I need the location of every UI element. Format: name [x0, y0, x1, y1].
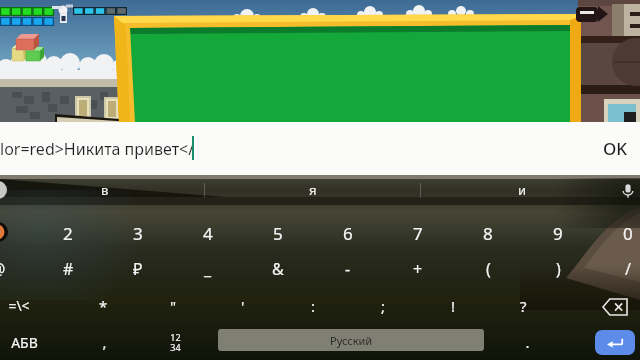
staticText: АБВ [11, 333, 38, 352]
button[interactable]: : [280, 289, 346, 323]
staticText: в [101, 181, 109, 199]
button[interactable]: 2 [35, 216, 101, 250]
button[interactable]: * [70, 289, 136, 323]
staticText: ₽ [133, 258, 143, 280]
staticText: - [345, 258, 351, 280]
button[interactable]: ' [210, 289, 276, 323]
staticText: 2 [63, 222, 73, 245]
button[interactable]: ₽ [105, 252, 171, 286]
button[interactable]: / [595, 252, 640, 286]
staticText: я [309, 181, 317, 199]
staticText: ! [451, 296, 456, 316]
staticText: 3 [133, 222, 143, 245]
button[interactable]: 5 [245, 216, 311, 250]
staticText: _ [204, 258, 212, 280]
staticText: и [518, 181, 527, 199]
button[interactable]: =\< [0, 289, 52, 321]
staticText: 12 34 [170, 331, 181, 353]
button[interactable]: + [385, 252, 451, 286]
button[interactable]: ; [350, 289, 416, 323]
staticText: 0 [623, 222, 633, 245]
staticText: 9 [553, 222, 563, 245]
button[interactable]: & [245, 252, 311, 286]
staticText: 1 [0, 222, 3, 245]
button[interactable]: ? [490, 289, 556, 323]
staticText: / [625, 258, 631, 280]
staticText: " [170, 296, 177, 316]
button[interactable]: 12 34 [150, 328, 200, 356]
staticText: + [413, 258, 423, 280]
staticText: # [63, 258, 74, 280]
button[interactable]: 8 [455, 216, 521, 250]
staticText: =\< [8, 296, 30, 315]
staticText: ; [381, 296, 386, 316]
staticText: 8 [483, 222, 493, 245]
button[interactable]: Voice input [618, 181, 638, 201]
staticText: OK [603, 137, 628, 160]
staticText: ( [486, 258, 491, 280]
button[interactable]: АБВ [0, 326, 57, 358]
staticText: . [525, 332, 530, 352]
button[interactable]: 4 [175, 216, 241, 250]
staticText: * [99, 296, 108, 316]
button[interactable]: 0 [595, 216, 640, 250]
button[interactable]: . [494, 326, 560, 358]
staticText: 4 [203, 222, 213, 245]
staticText: , [102, 332, 107, 352]
button[interactable]: 6 [315, 216, 381, 250]
button[interactable]: lor=red>Никита привет</ [0, 122, 640, 175]
staticText: ) [556, 258, 561, 280]
button[interactable]: - [315, 252, 381, 286]
staticText: Русский [330, 333, 373, 348]
button[interactable]: Русский [218, 329, 484, 351]
button[interactable]: и [490, 175, 554, 205]
staticText: ' [241, 296, 245, 316]
button[interactable]: 3 [105, 216, 171, 250]
button[interactable]: 7 [385, 216, 451, 250]
staticText: 6 [343, 222, 353, 245]
button[interactable]: 1 [0, 216, 31, 250]
button[interactable]: ) [525, 252, 591, 286]
button[interactable]: @ [0, 252, 31, 286]
staticText: & [272, 258, 284, 280]
staticText: @ [0, 258, 6, 280]
button[interactable]: Enter [595, 330, 635, 355]
button[interactable]: " [140, 289, 206, 323]
button[interactable]: я [281, 175, 345, 205]
button[interactable]: ! [420, 289, 486, 323]
staticText: : [311, 296, 316, 316]
button[interactable]: OK [603, 137, 628, 160]
button[interactable]: , [71, 326, 137, 358]
staticText: 7 [413, 222, 423, 245]
staticText: lor=red>Никита привет</ [0, 138, 195, 160]
staticText: 5 [273, 222, 283, 245]
button[interactable]: _ [175, 252, 241, 286]
button[interactable]: 9 [525, 216, 591, 250]
button[interactable]: в [73, 175, 137, 205]
staticText: ? [520, 296, 527, 316]
button[interactable]: Backspace [590, 293, 640, 321]
button[interactable]: ( [455, 252, 521, 286]
button[interactable]: # [35, 252, 101, 286]
